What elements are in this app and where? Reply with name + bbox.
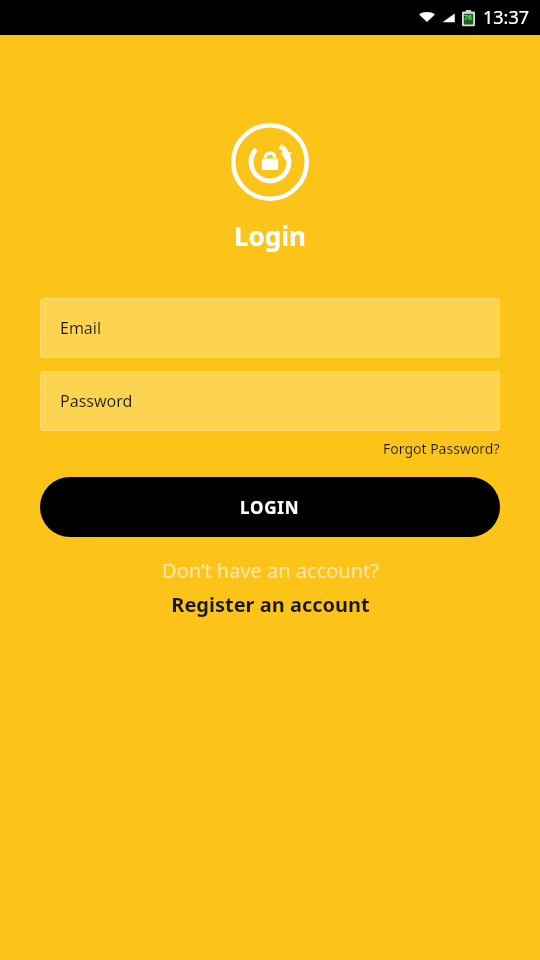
staticText: Register an account [171, 591, 370, 618]
button[interactable]: Don’t have an account? [150, 557, 391, 618]
button[interactable]: Password [40, 371, 500, 431]
button[interactable]: Forgot Password? [383, 436, 500, 461]
staticText: LOGIN [240, 496, 300, 519]
staticText: Login [234, 218, 306, 253]
button[interactable]: LOGIN [40, 477, 500, 537]
staticText: Password [60, 390, 133, 412]
other: App logo [231, 123, 309, 201]
staticText: 76 [464, 13, 473, 23]
staticText: Email [60, 317, 102, 339]
staticText: 13:37 [483, 5, 530, 30]
staticText: Forgot Password? [383, 439, 500, 458]
staticText: Don’t have an account? [162, 557, 379, 584]
button[interactable]: Email [40, 298, 500, 358]
